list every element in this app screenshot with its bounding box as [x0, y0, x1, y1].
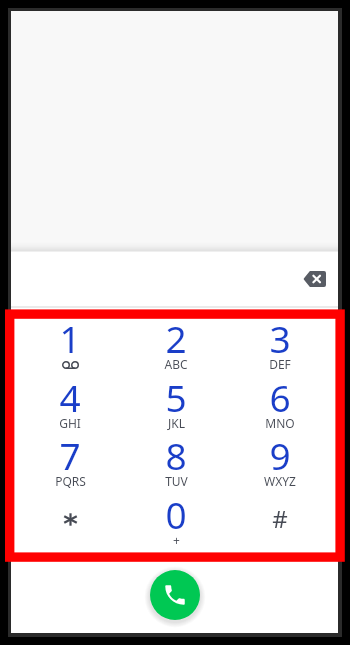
staticText: MNO	[265, 415, 295, 431]
button[interactable]: Backspace	[296, 261, 332, 297]
button[interactable]: Call	[150, 570, 200, 620]
button[interactable]: Star	[18, 488, 122, 546]
staticText: 0	[165, 489, 187, 539]
button[interactable]: 1 voicemail	[18, 312, 122, 370]
button[interactable]: Pound	[228, 488, 332, 546]
staticText: 1	[59, 313, 81, 363]
staticText: 5	[165, 372, 187, 422]
button[interactable]: 9 WXYZ	[228, 429, 332, 487]
button[interactable]: 7 PQRS	[18, 429, 122, 487]
button[interactable]: 8 TUV	[124, 429, 228, 487]
staticText: #	[272, 502, 288, 535]
button[interactable]: 4 GHI	[18, 371, 122, 429]
staticText: 3	[269, 313, 291, 363]
staticText: 7	[59, 430, 81, 480]
staticText: 9	[269, 430, 291, 480]
staticText: JKL	[168, 415, 185, 431]
button[interactable]: 3 DEF	[228, 312, 332, 370]
staticText: WXYZ	[264, 473, 296, 489]
staticText: 2	[165, 313, 187, 363]
staticText: DEF	[269, 356, 291, 372]
staticText: ABC	[164, 356, 188, 372]
staticText: 8	[165, 430, 187, 480]
staticText: PQRS	[55, 473, 86, 489]
staticText: 4	[59, 372, 81, 422]
button[interactable]: 6 MNO	[228, 371, 332, 429]
staticText: +	[173, 532, 180, 548]
staticText: 6	[269, 372, 291, 422]
staticText: GHI	[59, 415, 81, 431]
staticText: TUV	[165, 473, 188, 489]
button[interactable]: 2 ABC	[124, 312, 228, 370]
button[interactable]: 5 JKL	[124, 371, 228, 429]
button[interactable]: 0 +	[124, 488, 228, 546]
